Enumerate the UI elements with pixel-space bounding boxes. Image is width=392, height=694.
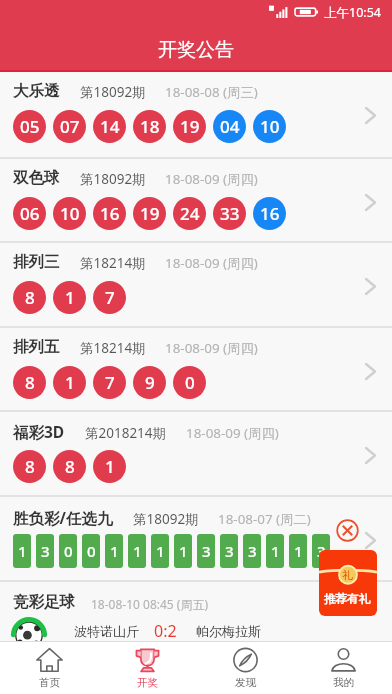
staticText: 1 [65, 286, 75, 309]
button[interactable]: 首页 [0, 642, 98, 694]
staticText: 19 [140, 202, 160, 225]
staticText: 双色球 [13, 168, 60, 188]
staticText: 1 [110, 541, 119, 561]
staticText: 排列五 [13, 337, 60, 357]
staticText: 0 [185, 371, 195, 394]
button[interactable]: 竞彩足球 [0, 582, 392, 641]
staticText: 大乐透 [13, 81, 60, 101]
staticText: 06 [20, 202, 40, 225]
staticText: 18-08-09 (周四) [165, 254, 258, 272]
staticText: 1 [271, 541, 280, 561]
button[interactable]: 胜负彩/任选九 [0, 497, 392, 580]
staticText: 1 [294, 541, 303, 561]
button[interactable]: 福彩3D [0, 412, 392, 495]
staticText: 18-08-09 (周四) [165, 339, 258, 357]
staticText: 1 [156, 541, 165, 561]
staticText: 首页 [39, 676, 60, 689]
staticText: 16 [100, 202, 120, 225]
staticText: 胜负彩/任选九 [13, 507, 113, 528]
staticText: 18-08-07 (周二) [218, 510, 311, 528]
staticText: 04 [220, 115, 240, 138]
button[interactable]: 关闭广告 [336, 519, 359, 542]
staticText: 10 [60, 202, 80, 225]
staticText: 33 [220, 202, 240, 225]
staticText: 8 [65, 455, 75, 478]
staticText: 上午10:54 [324, 4, 381, 21]
staticText: 18-08-08 (周三) [165, 83, 258, 101]
staticText: 1 [105, 455, 115, 478]
staticText: 24 [180, 202, 200, 225]
staticText: 18-08-10 08:45 (周五) [91, 596, 209, 612]
staticText: 0 [87, 541, 96, 561]
staticText: 07 [60, 115, 80, 138]
staticText: 3 [41, 541, 50, 561]
staticText: 8 [25, 286, 35, 309]
staticText: 发现 [235, 676, 256, 689]
staticText: 竞彩足球 [13, 592, 75, 612]
staticText: 18 [140, 115, 160, 138]
staticText: 19 [180, 115, 200, 138]
staticText: 10 [260, 115, 280, 138]
staticText: 9 [145, 371, 155, 394]
button[interactable]: 我的 [294, 642, 392, 694]
staticText: 8 [25, 455, 35, 478]
staticText: 16 [260, 202, 280, 225]
button[interactable]: 排列三 [0, 243, 392, 326]
staticText: 3 [317, 541, 326, 561]
staticText: 8 [25, 371, 35, 394]
staticText: 帕尔梅拉斯 [196, 623, 261, 639]
button[interactable]: 开奖 [98, 642, 196, 694]
staticText: 推荐有礼 [324, 592, 370, 606]
staticText: 18-08-09 (周四) [165, 170, 258, 188]
staticText: 7 [105, 286, 115, 309]
staticText: 第18092期 [80, 83, 146, 101]
staticText: 第18214期 [80, 254, 146, 272]
staticText: 14 [100, 115, 120, 138]
staticText: 3 [248, 541, 257, 561]
staticText: 波特诺山斤 [74, 623, 139, 639]
button[interactable]: 双色球 [0, 159, 392, 242]
staticText: 1 [18, 541, 27, 561]
staticText: 1 [133, 541, 142, 561]
staticText: 开奖 [137, 676, 158, 689]
button[interactable]: 发现 [196, 642, 294, 694]
staticText: 3 [225, 541, 234, 561]
staticText: 福彩3D [13, 421, 65, 442]
staticText: 第2018214期 [85, 424, 167, 442]
button[interactable]: 排列五 [0, 328, 392, 411]
button[interactable]: 大乐透 [0, 72, 392, 155]
staticText: 第18092期 [80, 170, 146, 188]
staticText: 我的 [333, 676, 354, 689]
staticText: 第18092期 [133, 510, 199, 528]
staticText: 礼 [342, 568, 353, 582]
staticText: 7 [105, 371, 115, 394]
staticText: 开奖公告 [158, 38, 234, 62]
staticText: 第18214期 [80, 339, 146, 357]
staticText: 0 [64, 541, 73, 561]
staticText: 18-08-09 (周四) [186, 424, 279, 442]
staticText: 05 [20, 115, 40, 138]
staticText: 3 [202, 541, 211, 561]
button[interactable]: 推荐有礼 [319, 550, 377, 616]
staticText: 0:2 [154, 620, 177, 642]
staticText: 1 [65, 371, 75, 394]
staticText: 1 [179, 541, 188, 561]
staticText: 排列三 [13, 252, 60, 272]
